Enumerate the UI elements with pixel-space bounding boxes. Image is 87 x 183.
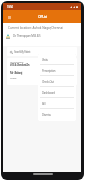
staticText: 10:54 — [7, 5, 13, 9]
staticText: Bill — [42, 102, 46, 106]
button[interactable]: Dismiss — [38, 109, 76, 120]
staticText: Dr. Thenappan M.B.B.S — [13, 34, 41, 38]
button[interactable]: Bill — [38, 98, 76, 109]
staticText: Visits — [42, 58, 48, 62]
staticText: #13 & Checked-In — [10, 63, 30, 67]
staticText: Search My Patient — [14, 50, 31, 54]
button[interactable]: Check-Out — [38, 76, 76, 87]
button[interactable]: Search My Patient — [7, 47, 77, 56]
staticText: Dashboard — [42, 91, 55, 95]
button[interactable]: Prescription — [38, 65, 76, 76]
button[interactable]: OP No & Status — [7, 58, 77, 85]
button[interactable]: Dashboard — [38, 87, 76, 98]
staticText: OP No & Status — [10, 60, 24, 63]
button[interactable]: Visits — [38, 54, 76, 65]
staticText: Check-Out — [42, 80, 54, 84]
button[interactable]: Menu — [5, 13, 13, 21]
staticText: Current location: Ashok Nagar,Chennai — [8, 26, 63, 30]
staticText: OPList — [38, 14, 47, 19]
staticText: Mr . Balaraj — [10, 71, 23, 75]
staticText: Dismiss — [42, 113, 51, 117]
staticText: Prescription — [42, 69, 56, 73]
staticText: CHR02 — [10, 76, 17, 79]
